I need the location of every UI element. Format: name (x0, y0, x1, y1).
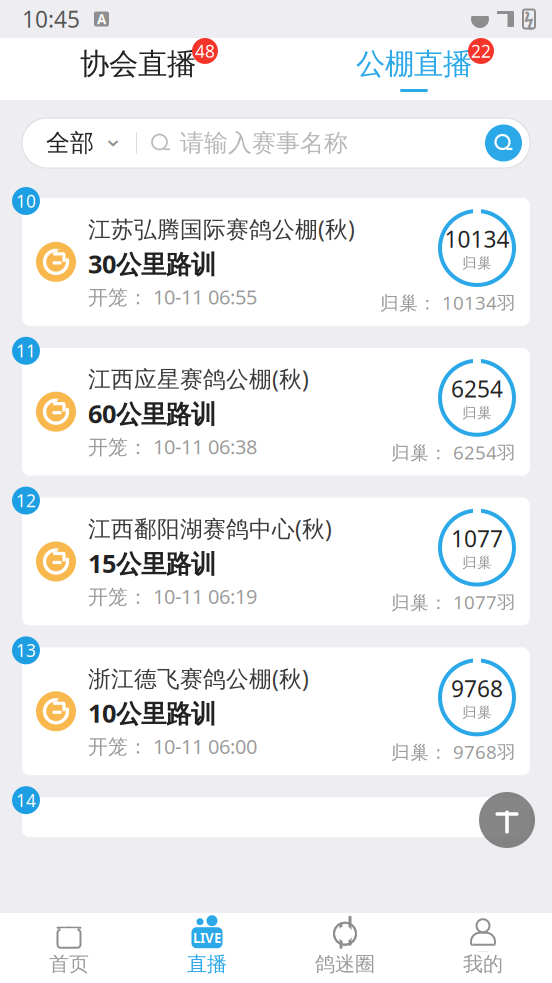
staticText: 鸽迷圈 (315, 952, 375, 976)
staticText: 22 (471, 39, 491, 62)
staticText: 归巢 (462, 404, 492, 422)
staticText: 浙江德飞赛鸽公棚(秋) (88, 663, 309, 693)
staticText: 开笼： 10-11 06:55 (88, 283, 257, 310)
button[interactable]: 浙江德飞赛鸽公棚(秋) (22, 647, 530, 775)
staticText: 48 (195, 39, 215, 62)
staticText: 开笼： 10-11 06:00 (88, 733, 257, 759)
button[interactable]: 我的 (414, 913, 552, 983)
staticText: 12 (16, 489, 36, 512)
staticText: 我的 (463, 952, 503, 976)
staticText: 开笼： 10-11 06:19 (88, 583, 257, 610)
staticText: 归巢 (462, 254, 492, 272)
staticText: ⌄ (103, 124, 123, 152)
staticText: A (97, 10, 106, 28)
staticText: 公棚直播 (356, 46, 472, 82)
staticText: 15公里路训 (88, 546, 216, 580)
staticText: 归巢： 10134羽 (380, 290, 516, 315)
staticText: 14 (16, 789, 36, 812)
button[interactable]: 江西应星赛鸽公棚(秋) (22, 348, 530, 476)
button[interactable] (479, 792, 535, 848)
staticText: 协会直播 (80, 46, 196, 82)
staticText: 开笼： 10-11 06:38 (88, 433, 257, 460)
staticText: 江西鄱阳湖赛鸽中心(秋) (88, 513, 332, 543)
button[interactable]: 协会直播 (0, 38, 276, 100)
staticText: 江西应星赛鸽公棚(秋) (88, 363, 309, 394)
button[interactable]: 江西鄱阳湖赛鸽中心(秋) (22, 498, 530, 625)
staticText: 60公里路训 (88, 397, 216, 430)
staticText: 归巢： 1077羽 (391, 590, 516, 614)
staticText: 13 (16, 639, 36, 662)
staticText: 归巢： 6254羽 (391, 440, 516, 465)
button[interactable]: LIVE (138, 913, 276, 983)
button[interactable]: 江苏弘腾国际赛鸽公棚(秋) (22, 198, 530, 326)
staticText: 9768 (451, 673, 503, 703)
staticText: 10 (16, 189, 36, 212)
staticText: 归巢 (462, 554, 492, 572)
staticText: 江苏弘腾国际赛鸽公棚(秋) (88, 214, 355, 244)
button[interactable]: 全部 (22, 118, 136, 168)
staticText: 请输入赛事名称 (180, 128, 348, 158)
button[interactable]: 首页 (0, 913, 138, 983)
staticText: 30公里路训 (88, 247, 216, 280)
staticText: 10:45 (22, 4, 80, 34)
button[interactable] (485, 124, 522, 161)
staticText: 11 (16, 339, 36, 362)
button[interactable]: 公棚直播 (276, 38, 552, 100)
staticText: 直播 (187, 952, 227, 976)
staticText: 10134 (444, 224, 509, 254)
staticText: 6254 (451, 374, 503, 404)
staticText: ϟ (524, 7, 534, 30)
staticText: 10公里路训 (88, 696, 216, 730)
staticText: 全部 (46, 128, 94, 158)
staticText: 归巢 (462, 703, 492, 721)
staticText: 归巢： 9768羽 (391, 739, 516, 764)
staticText: 首页 (49, 952, 89, 976)
button[interactable]: 请输入赛事名称 (137, 118, 485, 168)
button[interactable]: 鸽迷圈 (276, 913, 414, 983)
staticText: 1077 (451, 523, 503, 554)
staticText: LIVE (193, 929, 221, 947)
